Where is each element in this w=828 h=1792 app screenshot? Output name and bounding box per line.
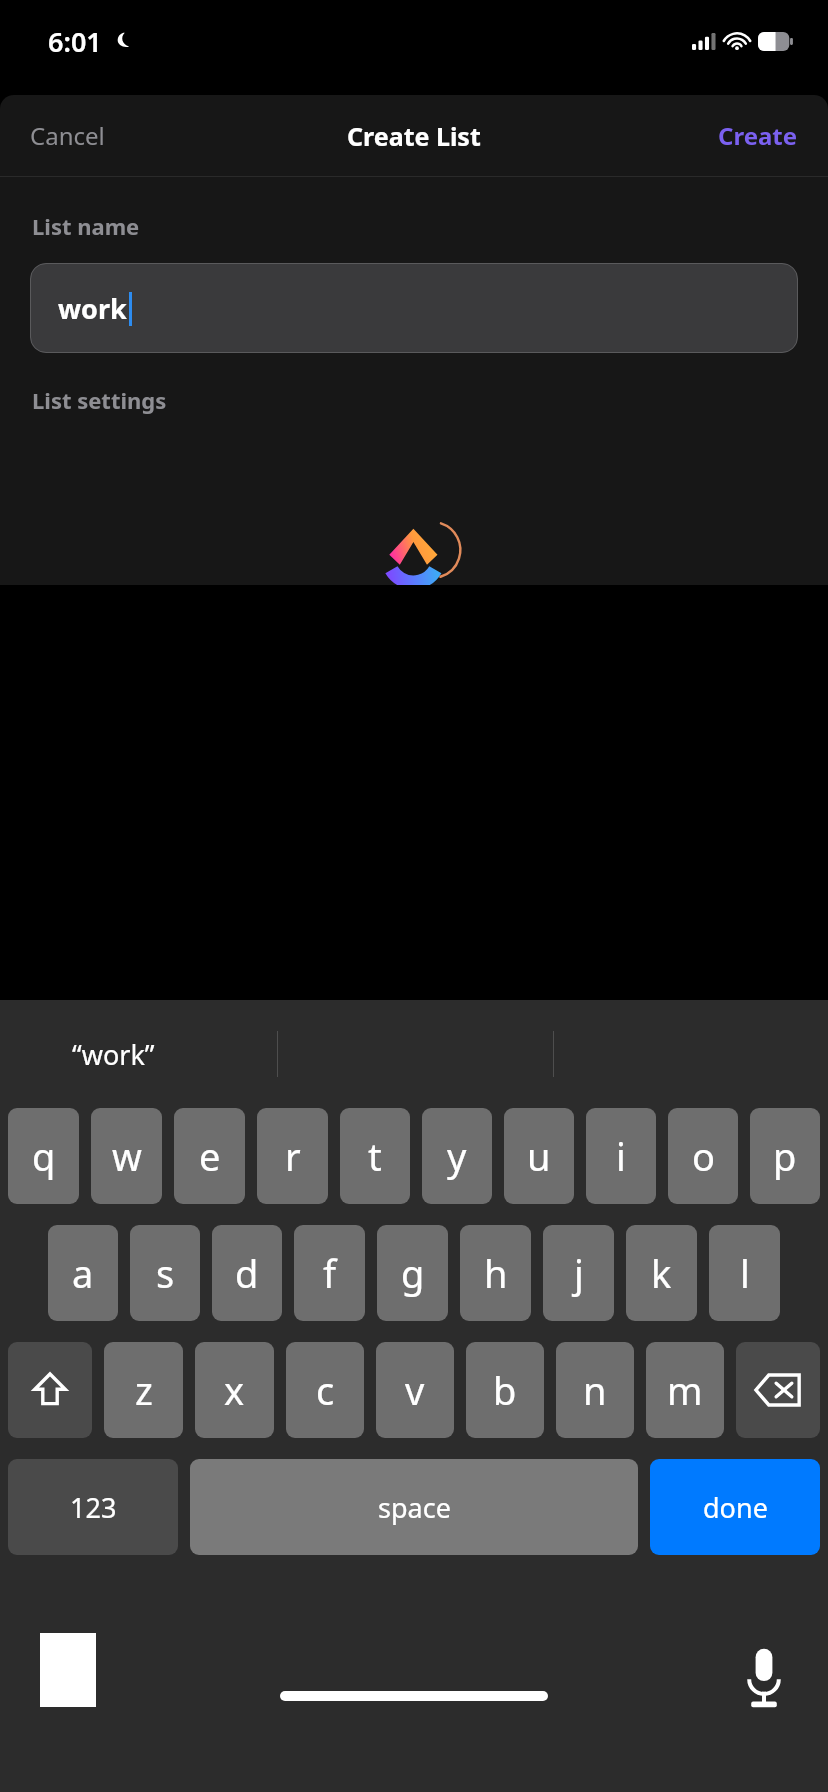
staticText: m: [667, 1364, 703, 1416]
staticText: t: [368, 1130, 382, 1182]
staticText: Cancel: [30, 119, 105, 152]
button[interactable]: m: [646, 1342, 724, 1438]
button[interactable]: e: [174, 1108, 245, 1204]
staticText: w: [112, 1130, 142, 1182]
button[interactable]: u: [504, 1108, 574, 1204]
button[interactable]: z: [104, 1342, 183, 1438]
button[interactable]: Delete: [736, 1342, 820, 1438]
button[interactable]: s: [130, 1225, 200, 1321]
button[interactable]: Shift: [8, 1342, 92, 1438]
button[interactable]: space: [190, 1459, 638, 1555]
staticText: List name: [32, 211, 140, 241]
staticText: q: [32, 1130, 56, 1182]
staticText: i: [616, 1130, 626, 1182]
button[interactable]: Dictation: [736, 1641, 792, 1715]
button[interactable]: i: [586, 1108, 656, 1204]
button[interactable]: “work”: [72, 1036, 155, 1073]
staticText: s: [156, 1247, 175, 1299]
button[interactable]: w: [91, 1108, 162, 1204]
staticText: g: [401, 1247, 425, 1299]
button[interactable]: work: [30, 263, 798, 353]
staticText: a: [72, 1247, 94, 1299]
button[interactable]: h: [460, 1225, 531, 1321]
staticText: List settings: [32, 385, 167, 415]
button[interactable]: t: [340, 1108, 410, 1204]
staticText: Create List: [347, 119, 481, 153]
button[interactable]: l: [709, 1225, 780, 1321]
staticText: j: [574, 1247, 584, 1299]
staticText: p: [773, 1130, 797, 1182]
staticText: d: [235, 1247, 259, 1299]
button[interactable]: a: [48, 1225, 118, 1321]
button[interactable]: c: [286, 1342, 364, 1438]
staticText: done: [703, 1489, 768, 1526]
staticText: k: [651, 1247, 672, 1299]
button[interactable]: f: [294, 1225, 365, 1321]
button[interactable]: done: [650, 1459, 820, 1555]
staticText: b: [493, 1364, 517, 1416]
button[interactable]: v: [376, 1342, 454, 1438]
button[interactable]: x: [195, 1342, 274, 1438]
staticText: 123: [70, 1489, 117, 1526]
staticText: u: [527, 1130, 551, 1182]
button[interactable]: d: [212, 1225, 282, 1321]
staticText: r: [285, 1130, 301, 1182]
staticText: l: [740, 1247, 750, 1299]
staticText: h: [484, 1247, 508, 1299]
staticText: Create: [718, 119, 798, 152]
button[interactable]: p: [750, 1108, 820, 1204]
button[interactable]: o: [668, 1108, 738, 1204]
button[interactable]: Create: [688, 107, 828, 164]
button[interactable]: n: [556, 1342, 634, 1438]
staticText: x: [224, 1364, 245, 1416]
staticText: y: [447, 1130, 467, 1182]
staticText: z: [135, 1364, 153, 1416]
button[interactable]: q: [8, 1108, 79, 1204]
button[interactable]: y: [422, 1108, 492, 1204]
button[interactable]: j: [543, 1225, 614, 1321]
staticText: n: [583, 1364, 607, 1416]
staticText: f: [323, 1247, 337, 1299]
staticText: e: [199, 1130, 221, 1182]
button[interactable]: 123: [8, 1459, 178, 1555]
staticText: o: [692, 1130, 715, 1182]
staticText: c: [316, 1364, 335, 1416]
staticText: 6:01: [48, 23, 102, 60]
button[interactable]: Cancel: [0, 107, 135, 164]
button[interactable]: k: [626, 1225, 697, 1321]
staticText: space: [378, 1489, 451, 1526]
staticText: v: [405, 1364, 425, 1416]
staticText: work: [58, 290, 127, 327]
button[interactable]: b: [466, 1342, 544, 1438]
button[interactable]: g: [377, 1225, 448, 1321]
button[interactable]: r: [257, 1108, 328, 1204]
